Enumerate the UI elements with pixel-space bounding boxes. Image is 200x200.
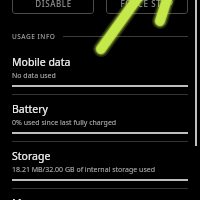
staticText: Battery (12, 102, 48, 116)
button[interactable]: FORCE STOP (106, 0, 188, 14)
button[interactable]: Memory (0, 189, 200, 200)
staticText: Storage (12, 149, 51, 163)
staticText: 18.21 MB/32.00 GB of internal storage us… (12, 165, 156, 175)
staticText: DISABLE (35, 0, 72, 9)
staticText: 0% used since last fully charged (12, 118, 117, 128)
staticText: USAGE INFO (12, 32, 56, 41)
staticText: Memory (12, 196, 54, 200)
button[interactable]: DISABLE (12, 0, 94, 14)
staticText: No data used (12, 71, 56, 81)
staticText: Mobile data (12, 55, 71, 69)
button[interactable]: Storage (0, 142, 200, 189)
staticText: FORCE STOP (120, 0, 174, 9)
button[interactable]: Mobile data (0, 48, 200, 95)
button[interactable]: Battery (0, 95, 200, 142)
